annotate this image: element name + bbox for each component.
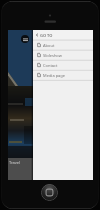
button[interactable]: Media page — [33, 70, 93, 80]
button[interactable]: GO TO — [33, 30, 93, 40]
button[interactable]: Home — [41, 184, 58, 201]
staticText: Slideshow — [43, 53, 62, 58]
staticText: GO TO — [40, 33, 53, 38]
staticText: Contact — [43, 63, 58, 68]
staticText: Media page — [43, 73, 66, 78]
button[interactable]: About — [33, 40, 93, 50]
staticText: About — [43, 43, 55, 48]
button[interactable]: Menu — [21, 35, 29, 43]
button[interactable]: Contact — [33, 60, 93, 70]
button[interactable]: Slideshow — [33, 50, 93, 60]
staticText: Travel — [9, 160, 21, 165]
